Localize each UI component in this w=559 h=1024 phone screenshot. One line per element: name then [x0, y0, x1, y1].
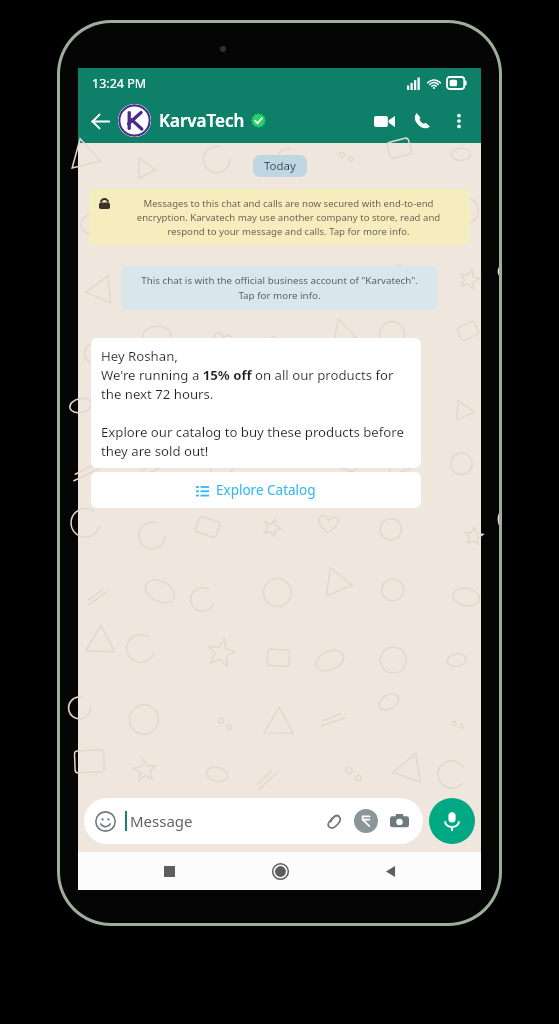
button[interactable]: Payments: [354, 809, 378, 833]
staticText: Messages to this chat and calls are now …: [117, 197, 460, 238]
staticText: KarvaTech: [159, 109, 245, 132]
button[interactable]: More options: [441, 103, 477, 139]
button[interactable]: Voice message: [429, 798, 475, 844]
staticText: This chat is with the official business …: [133, 274, 426, 302]
staticText: 13:24 PM: [92, 75, 147, 92]
staticText: Explore Catalog: [216, 481, 316, 499]
button[interactable]: Home: [260, 852, 300, 890]
staticText: Today: [264, 158, 296, 174]
button[interactable]: Profile photo: [118, 104, 151, 137]
button[interactable]: Back: [84, 105, 116, 137]
button[interactable]: This chat is with the official business …: [121, 266, 438, 310]
button[interactable]: Today: [253, 155, 307, 177]
staticText: Hey Roshan, We're running a 15% off on a…: [101, 347, 411, 459]
button[interactable]: Voice call: [403, 102, 441, 140]
button[interactable]: Messages to this chat and calls are now …: [89, 189, 470, 246]
button[interactable]: Video call: [365, 102, 403, 140]
button[interactable]: Recent apps: [149, 852, 189, 890]
button[interactable]: Hey Roshan, We're running a 15% off on a…: [91, 338, 421, 468]
staticText: Message: [130, 811, 193, 831]
button[interactable]: Camera: [386, 808, 412, 834]
button[interactable]: Explore Catalog: [91, 472, 421, 508]
button[interactable]: Attach: [321, 808, 347, 834]
button[interactable]: Back: [370, 852, 410, 890]
button[interactable]: Message: [84, 798, 423, 844]
